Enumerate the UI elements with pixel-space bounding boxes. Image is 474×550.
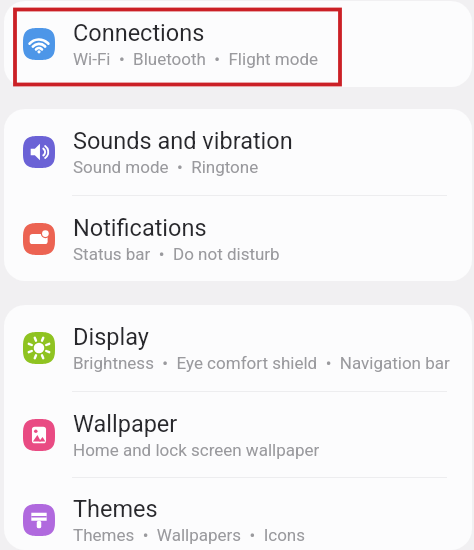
staticText: Themes • Wallpapers • Icons — [73, 525, 306, 545]
staticText: Notifications — [73, 214, 207, 242]
staticText: Connections — [73, 19, 205, 47]
staticText: Sounds and vibration — [73, 127, 293, 155]
button[interactable]: Themes — [4, 478, 472, 550]
staticText: Status bar • Do not disturb — [73, 244, 280, 264]
staticText: Sound mode • Ringtone — [73, 157, 259, 177]
staticText: Wallpaper — [73, 410, 178, 438]
button[interactable]: Sounds and vibration — [4, 109, 472, 195]
button[interactable]: Notifications — [4, 196, 472, 281]
button[interactable]: Connections — [4, 1, 472, 87]
staticText: Themes — [73, 495, 158, 523]
button[interactable]: Display — [4, 305, 472, 391]
staticText: Home and lock screen wallpaper — [73, 440, 320, 460]
button[interactable]: Wallpaper — [4, 392, 472, 477]
staticText: Brightness • Eye comfort shield • Naviga… — [73, 353, 450, 373]
staticText: Display — [73, 323, 149, 351]
staticText: Wi-Fi • Bluetooth • Flight mode — [73, 49, 319, 69]
